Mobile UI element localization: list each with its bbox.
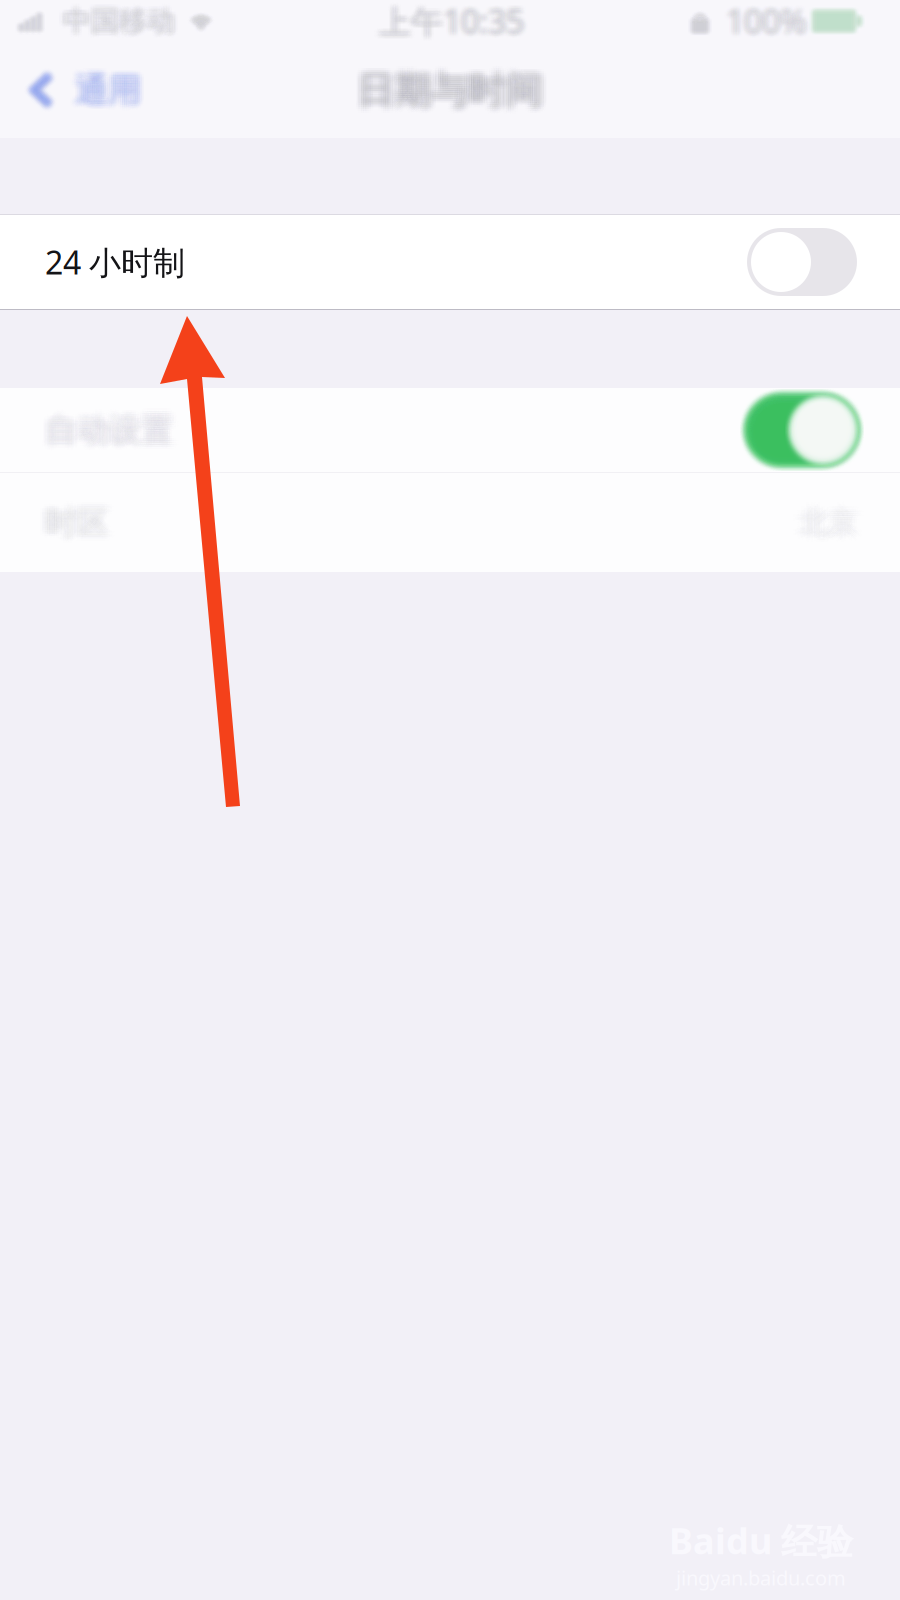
staticText: 北京 <box>799 510 857 546</box>
staticText: 通用 <box>77 68 143 109</box>
staticText: 自动设置 <box>50 414 178 454</box>
staticText: 上午10:35 <box>381 0 526 42</box>
staticText: 自动设置 <box>43 412 171 452</box>
staticText: 日期与时间 <box>362 73 547 119</box>
staticText: 自动设置 <box>43 414 171 454</box>
staticText: 上午10:35 <box>376 3 521 45</box>
staticText: 100% <box>731 0 812 38</box>
staticText: 日期与时间 <box>364 61 549 107</box>
staticText: 北京 <box>804 510 862 546</box>
staticText: 日期与时间 <box>353 61 538 107</box>
staticText: 时区 <box>38 501 102 540</box>
staticText: 通用 <box>75 75 141 115</box>
staticText: 日期与时间 <box>355 69 540 115</box>
staticText: 日期与时间 <box>364 67 549 113</box>
staticText: 上午10:35 <box>381 4 526 46</box>
staticText: 24 小时制 <box>45 241 185 283</box>
staticText: 100% <box>729 3 810 45</box>
staticText: 日期与时间 <box>362 69 547 115</box>
staticText: 日期与时间 <box>355 61 540 107</box>
staticText: 自动设置 <box>40 416 168 456</box>
button[interactable]: 通用 <box>0 42 161 138</box>
staticText: 中国移动 <box>68 1 180 35</box>
staticText: 上午10:35 <box>384 1 529 44</box>
staticText: 中国移动 <box>66 2 178 37</box>
staticText: 时区 <box>40 499 104 538</box>
staticText: 中国移动 <box>58 0 170 34</box>
staticText: 北京 <box>792 506 850 542</box>
staticText: 100% <box>726 0 807 41</box>
button[interactable]: 自动设置 <box>0 388 900 472</box>
staticText: 日期与时间 <box>350 63 535 109</box>
staticText: 上午10:35 <box>374 4 519 46</box>
staticText: 通用 <box>81 75 147 115</box>
staticText: 北京 <box>794 506 852 542</box>
staticText: 通用 <box>81 73 147 114</box>
button[interactable]: 24 小时制 <box>0 215 900 309</box>
staticText: 日期与时间 <box>362 71 547 117</box>
staticText: 北京 <box>797 510 855 546</box>
staticText: 日期与时间 <box>360 61 545 107</box>
staticText: 日期与时间 <box>364 65 549 111</box>
staticText: 时区 <box>43 497 107 536</box>
staticText: 日期与时间 <box>364 63 549 109</box>
staticText: 100% <box>721 4 802 46</box>
staticText: 通用 <box>71 71 137 112</box>
staticText: 100% <box>731 3 812 45</box>
staticText: 上午10:35 <box>381 1 526 44</box>
staticText: 上午10:35 <box>379 0 524 41</box>
staticText: 自动设置 <box>47 406 175 446</box>
staticText: 中国移动 <box>60 8 172 42</box>
staticText: 中国移动 <box>66 1 178 35</box>
staticText: 通用 <box>81 66 147 107</box>
staticText: 中国移动 <box>63 7 175 41</box>
staticText: 上午10:35 <box>382 0 527 42</box>
staticText: 上午10:35 <box>374 0 519 39</box>
staticText: 中国移动 <box>58 1 170 35</box>
staticText: 通用 <box>79 71 145 112</box>
staticText: 自动设置 <box>38 416 166 456</box>
staticText: 中国移动 <box>68 0 180 34</box>
staticText: 通用 <box>79 69 145 110</box>
staticText: 日期与时间 <box>357 73 542 119</box>
staticText: 日期与时间 <box>364 69 549 115</box>
staticText: 日期与时间 <box>355 71 540 117</box>
staticText: 时区 <box>43 507 107 546</box>
staticText: 时区 <box>38 505 102 544</box>
staticText: 上午10:35 <box>379 0 524 38</box>
staticText: 日期与时间 <box>350 67 535 113</box>
staticText: 通用 <box>71 69 137 110</box>
staticText: 日期与时间 <box>360 63 545 109</box>
staticText: 时区 <box>43 501 107 540</box>
staticText: 时区 <box>40 503 104 542</box>
staticText: 通用 <box>79 68 145 109</box>
staticText: 北京 <box>806 510 864 546</box>
button[interactable]: 时区 <box>0 473 900 572</box>
staticText: 通用 <box>81 69 147 110</box>
staticText: 时区 <box>47 501 111 540</box>
staticText: 自动设置 <box>38 406 166 446</box>
staticText: 中国移动 <box>65 4 177 38</box>
staticText: 上午10:35 <box>377 3 522 45</box>
staticText: 北京 <box>799 502 857 538</box>
staticText: 日期与时间 <box>350 71 535 117</box>
staticText: 北京 <box>794 500 852 536</box>
staticText: 通用 <box>71 66 137 107</box>
staticText: 自动设置 <box>40 410 168 450</box>
staticText: 中国移动 <box>65 5 177 40</box>
staticText: 上午10:35 <box>384 4 529 46</box>
staticText: 日期与时间 <box>357 67 542 113</box>
staticText: 北京 <box>801 504 859 540</box>
staticText: 日期与时间 <box>362 61 547 107</box>
staticText: 北京 <box>797 506 855 542</box>
staticText: 通用 <box>81 71 147 112</box>
staticText: 时区 <box>52 501 116 540</box>
staticText: 自动设置 <box>40 404 168 444</box>
staticText: 日期与时间 <box>350 65 535 111</box>
staticText: 100% <box>731 4 812 46</box>
staticText: 日期与时间 <box>353 67 538 113</box>
staticText: 时区 <box>45 503 109 542</box>
staticText: 上午10:35 <box>382 4 527 46</box>
staticText: 100% <box>724 0 805 38</box>
